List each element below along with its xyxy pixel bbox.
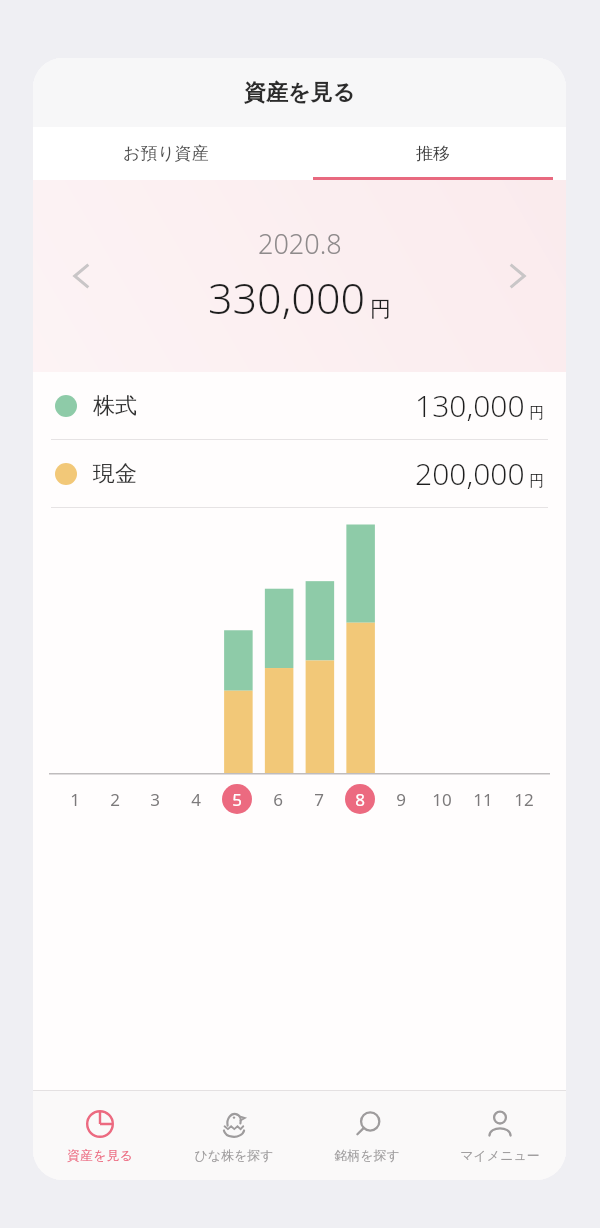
button[interactable]: お預り資産 bbox=[33, 127, 299, 180]
staticText: 3 bbox=[150, 788, 160, 811]
button[interactable]: 株式 bbox=[33, 372, 566, 439]
button[interactable]: 8 bbox=[345, 784, 375, 814]
staticText: 10 bbox=[432, 788, 452, 811]
staticText: 現金 bbox=[93, 460, 137, 488]
staticText: 資産を見る bbox=[67, 1147, 133, 1163]
button[interactable]: 4 bbox=[181, 784, 211, 814]
staticText: お預り資産 bbox=[123, 143, 209, 164]
staticText: ひな株を探す bbox=[194, 1147, 274, 1163]
button[interactable]: 1 bbox=[60, 784, 90, 814]
staticText: 9 bbox=[396, 788, 406, 811]
staticText: 1 bbox=[70, 788, 80, 811]
button[interactable]: マイメニュー bbox=[433, 1091, 566, 1180]
staticText: 円 bbox=[529, 404, 544, 423]
button[interactable]: 7 bbox=[304, 784, 334, 814]
button[interactable]: Previous month bbox=[55, 249, 109, 303]
staticText: 130,000 bbox=[415, 385, 525, 426]
staticText: 7 bbox=[314, 788, 324, 811]
staticText: 推移 bbox=[416, 143, 450, 164]
button[interactable]: 9 bbox=[386, 784, 416, 814]
staticText: 5 bbox=[232, 788, 242, 811]
staticText: 6 bbox=[273, 788, 283, 811]
staticText: マイメニュー bbox=[460, 1147, 540, 1163]
button[interactable]: 現金 bbox=[33, 440, 566, 507]
button[interactable]: 11 bbox=[468, 784, 498, 814]
button[interactable]: 銘柄を探す bbox=[300, 1091, 433, 1180]
button[interactable]: 2 bbox=[100, 784, 130, 814]
staticText: 円 bbox=[529, 472, 544, 491]
staticText: 資産を見る bbox=[244, 79, 356, 107]
button[interactable]: 推移 bbox=[299, 127, 566, 180]
staticText: 11 bbox=[473, 788, 493, 811]
button[interactable]: 12 bbox=[509, 784, 539, 814]
button[interactable]: 6 bbox=[263, 784, 293, 814]
staticText: 8 bbox=[355, 788, 365, 811]
staticText: 4 bbox=[191, 788, 201, 811]
button[interactable]: 3 bbox=[140, 784, 170, 814]
button[interactable]: 10 bbox=[427, 784, 457, 814]
staticText: 円 bbox=[370, 296, 391, 322]
button[interactable]: Next month bbox=[490, 249, 544, 303]
button[interactable]: 5 bbox=[222, 784, 252, 814]
button[interactable]: 資産を見る bbox=[33, 1091, 167, 1180]
staticText: 株式 bbox=[93, 392, 137, 420]
staticText: 330,000 bbox=[208, 268, 365, 327]
button[interactable]: ひな株を探す bbox=[167, 1091, 300, 1180]
staticText: 200,000 bbox=[415, 453, 525, 494]
staticText: 銘柄を探す bbox=[334, 1147, 400, 1163]
staticText: 12 bbox=[514, 788, 534, 811]
staticText: 2020.8 bbox=[258, 225, 342, 262]
staticText: 2 bbox=[110, 788, 120, 811]
